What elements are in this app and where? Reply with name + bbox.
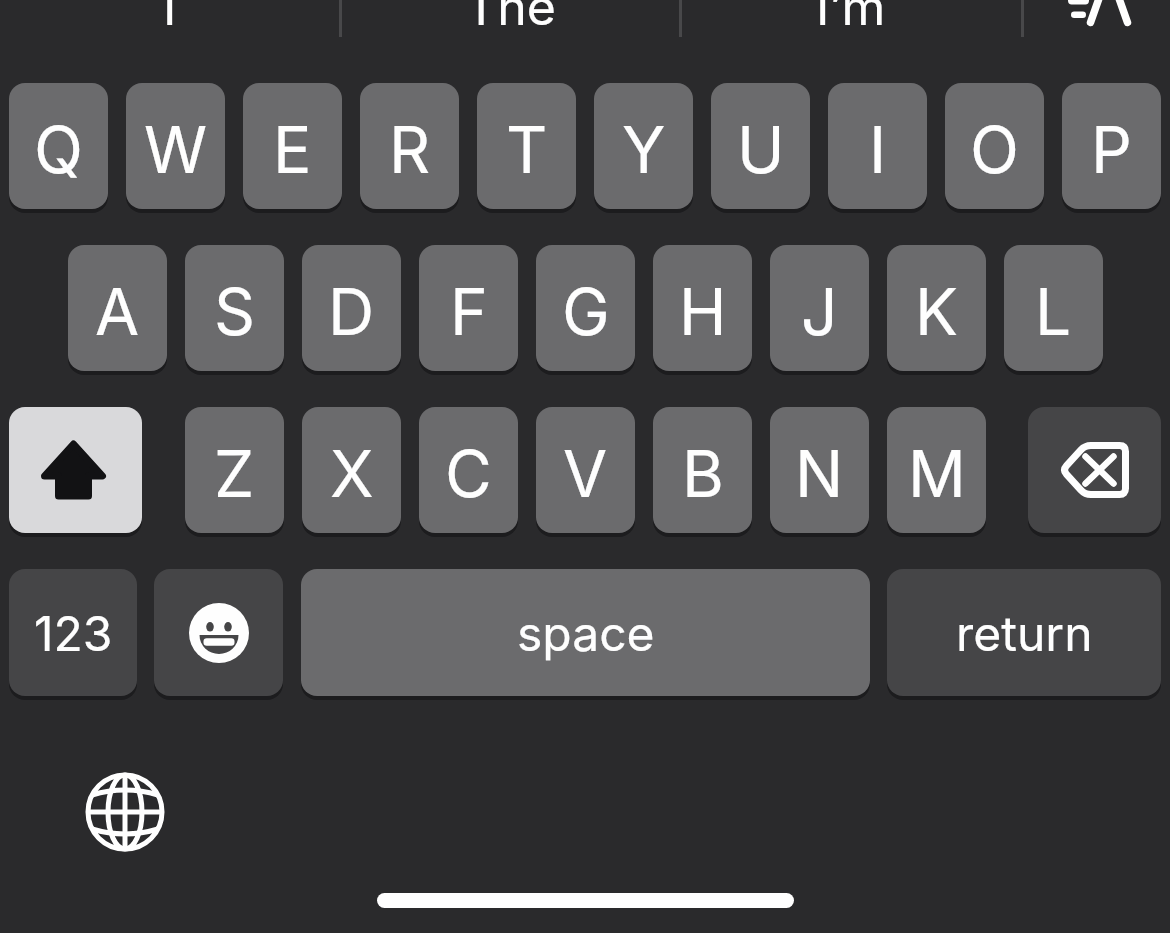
staticText: F — [450, 273, 488, 350]
button[interactable]: E — [243, 83, 342, 209]
button[interactable]: J — [770, 245, 869, 371]
staticText: P — [1091, 111, 1132, 188]
staticText: I — [869, 111, 887, 188]
staticText: T — [506, 111, 548, 188]
staticText: space — [517, 604, 655, 662]
staticText: Z — [214, 435, 255, 512]
button[interactable]: 123 — [9, 569, 137, 696]
staticText: The — [465, 0, 556, 37]
staticText: I’m — [816, 0, 886, 37]
button[interactable]: S — [185, 245, 284, 371]
staticText: B — [682, 435, 724, 512]
staticText: L — [1035, 273, 1072, 350]
staticText: W — [144, 111, 208, 188]
button[interactable]: M — [887, 407, 986, 533]
staticText: E — [273, 111, 312, 188]
staticText: M — [908, 435, 966, 512]
staticText: O — [970, 111, 1019, 188]
button[interactable]: K — [887, 245, 986, 371]
button[interactable]: P — [1062, 83, 1161, 209]
button[interactable]: return — [887, 569, 1161, 696]
button[interactable]: W — [126, 83, 225, 209]
staticText: return — [956, 604, 1093, 662]
button[interactable] — [154, 569, 283, 696]
button[interactable]: N — [770, 407, 869, 533]
button[interactable]: H — [653, 245, 752, 371]
staticText: I — [163, 0, 177, 37]
button[interactable]: I — [0, 0, 340, 39]
button[interactable]: T — [477, 83, 576, 209]
button[interactable]: space — [301, 569, 870, 696]
button[interactable]: F — [419, 245, 518, 371]
staticText: C — [445, 435, 492, 512]
staticText: 123 — [34, 604, 113, 662]
staticText: U — [737, 111, 785, 188]
button[interactable]: B — [653, 407, 752, 533]
button[interactable]: G — [536, 245, 635, 371]
button[interactable]: Z — [185, 407, 284, 533]
button[interactable]: A — [68, 245, 167, 371]
button[interactable]: V — [536, 407, 635, 533]
button[interactable] — [75, 762, 175, 862]
staticText: Y — [622, 111, 666, 188]
button[interactable]: I — [828, 83, 927, 209]
button[interactable]: Q — [9, 83, 108, 209]
staticText: J — [801, 273, 838, 350]
button[interactable]: D — [302, 245, 401, 371]
staticText: K — [915, 273, 958, 350]
button[interactable]: O — [945, 83, 1044, 209]
button[interactable]: I’m — [680, 0, 1022, 39]
staticText: A — [95, 273, 140, 350]
button[interactable]: C — [419, 407, 518, 533]
staticText: S — [214, 273, 256, 350]
button[interactable]: L — [1004, 245, 1103, 371]
button[interactable]: Y — [594, 83, 693, 209]
staticText: H — [679, 273, 727, 350]
staticText: D — [328, 273, 375, 350]
button[interactable]: The — [340, 0, 680, 39]
button[interactable] — [1028, 407, 1161, 533]
staticText: R — [389, 111, 431, 188]
button[interactable]: U — [711, 83, 810, 209]
button[interactable] — [9, 407, 142, 533]
staticText: G — [562, 273, 610, 350]
button[interactable]: R — [360, 83, 459, 209]
staticText: N — [795, 435, 844, 512]
button[interactable]: X — [302, 407, 401, 533]
staticText: V — [563, 435, 608, 512]
staticText: X — [330, 435, 374, 512]
staticText: Q — [34, 111, 83, 188]
